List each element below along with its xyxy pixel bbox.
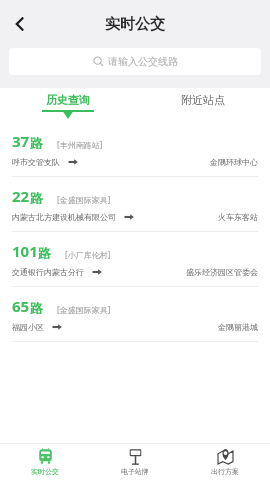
staticText: 电子站牌: [121, 467, 149, 476]
staticText: 路: [30, 190, 43, 206]
staticText: 实时公交: [31, 467, 59, 476]
staticText: 37: [12, 131, 30, 151]
staticText: 路: [30, 135, 43, 151]
button[interactable]: Back: [0, 4, 40, 44]
staticText: 65: [12, 296, 30, 316]
staticText: 盛乐经济园区管委会: [186, 267, 258, 277]
staticText: 路: [38, 245, 51, 261]
staticText: 金隅丽港城: [218, 322, 258, 332]
staticText: [金盛国际家具]: [57, 194, 111, 205]
staticText: [金盛国际家具]: [57, 304, 111, 315]
staticText: 火车东客站: [218, 212, 258, 222]
button[interactable]: 请输入公交线路: [9, 48, 261, 75]
staticText: 22: [12, 186, 30, 206]
staticText: 福园小区: [12, 322, 44, 332]
button[interactable]: 实时公交: [0, 444, 90, 480]
button[interactable]: 历史查询: [0, 88, 135, 122]
button[interactable]: 65: [0, 287, 270, 342]
button[interactable]: 电子站牌: [90, 444, 180, 480]
staticText: 路: [30, 300, 43, 316]
button[interactable]: 37: [0, 122, 270, 177]
staticText: 历史查询: [46, 93, 90, 107]
staticText: [丰州南路站]: [57, 139, 103, 150]
button[interactable]: 附近站点: [135, 88, 270, 122]
staticText: 金隅环球中心: [210, 157, 258, 167]
button[interactable]: 22: [0, 177, 270, 232]
staticText: 呼市交管支队: [12, 157, 60, 167]
button[interactable]: 出行方案: [180, 444, 270, 480]
staticText: [小厂库伦村]: [65, 249, 111, 260]
staticText: 内蒙古北方建设机械有限公司: [12, 212, 116, 222]
staticText: 出行方案: [211, 467, 239, 476]
staticText: 附近站点: [181, 93, 225, 107]
staticText: 交通银行内蒙古分行: [12, 267, 84, 277]
staticText: 请输入公交线路: [108, 55, 178, 68]
staticText: 101: [12, 241, 38, 261]
staticText: 实时公交: [105, 15, 165, 34]
button[interactable]: 101: [0, 232, 270, 287]
